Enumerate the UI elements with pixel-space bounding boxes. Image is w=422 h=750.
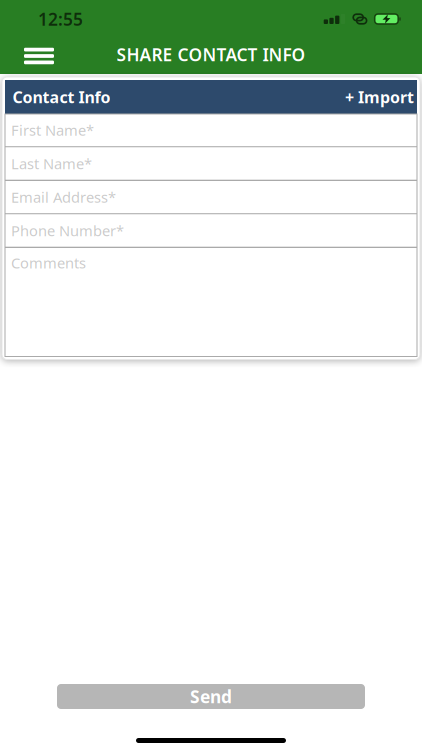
staticText: 12:55 — [38, 7, 83, 30]
staticText: Email Address* — [11, 187, 116, 207]
staticText: Send — [190, 685, 232, 708]
staticText: First Name* — [11, 120, 94, 140]
staticText: Contact Info — [12, 86, 110, 108]
staticText: Comments — [11, 253, 86, 272]
staticText: Last Name* — [11, 154, 92, 173]
staticText: SHARE CONTACT INFO — [116, 43, 305, 66]
staticText: + Import — [345, 86, 414, 108]
button[interactable]: Send — [57, 684, 365, 709]
staticText: Phone Number* — [11, 221, 124, 240]
button[interactable]: Menu — [17, 38, 61, 74]
button[interactable]: + Import — [345, 80, 414, 114]
